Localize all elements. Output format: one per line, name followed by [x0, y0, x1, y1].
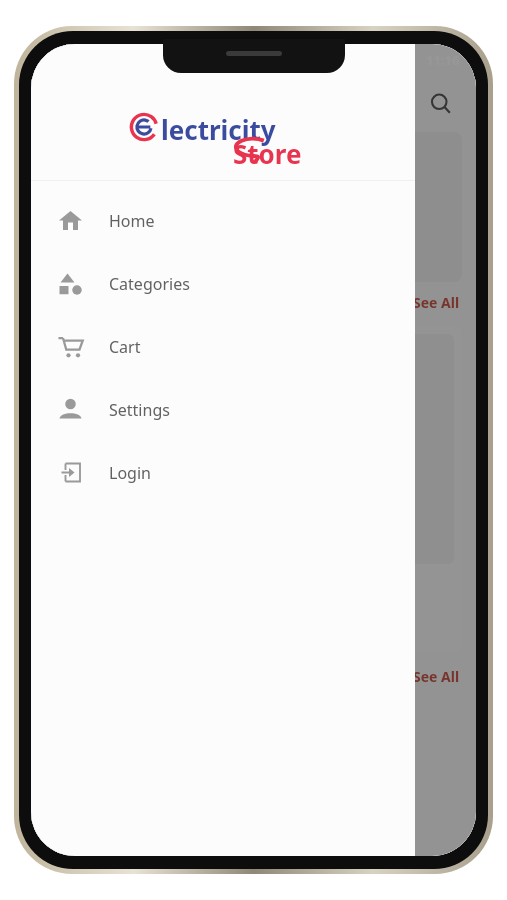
button[interactable]: 2 MP Artificial Lens	[45, 326, 462, 653]
staticText: Cart	[109, 336, 141, 358]
button[interactable]: Z8	[45, 132, 462, 282]
staticText: Categories	[109, 273, 190, 295]
staticText: See All	[413, 293, 460, 312]
button[interactable]: Home	[31, 189, 415, 252]
button[interactable]: Categories	[31, 252, 415, 315]
staticText: Popular	[47, 292, 106, 312]
staticText: See All	[413, 667, 460, 686]
staticText: lectricity	[161, 112, 276, 147]
button[interactable]: See All	[413, 293, 460, 312]
button[interactable]: Search	[424, 87, 458, 121]
staticText: Store	[233, 136, 302, 171]
button[interactable]: See All	[413, 667, 460, 686]
staticText: Home	[109, 210, 155, 232]
staticText: Login	[109, 462, 151, 484]
staticText: 11:16	[426, 51, 460, 69]
button[interactable]: Login	[31, 441, 415, 504]
button[interactable]: Settings	[31, 378, 415, 441]
button[interactable]: Cart	[31, 315, 415, 378]
staticText: Settings	[109, 399, 170, 421]
